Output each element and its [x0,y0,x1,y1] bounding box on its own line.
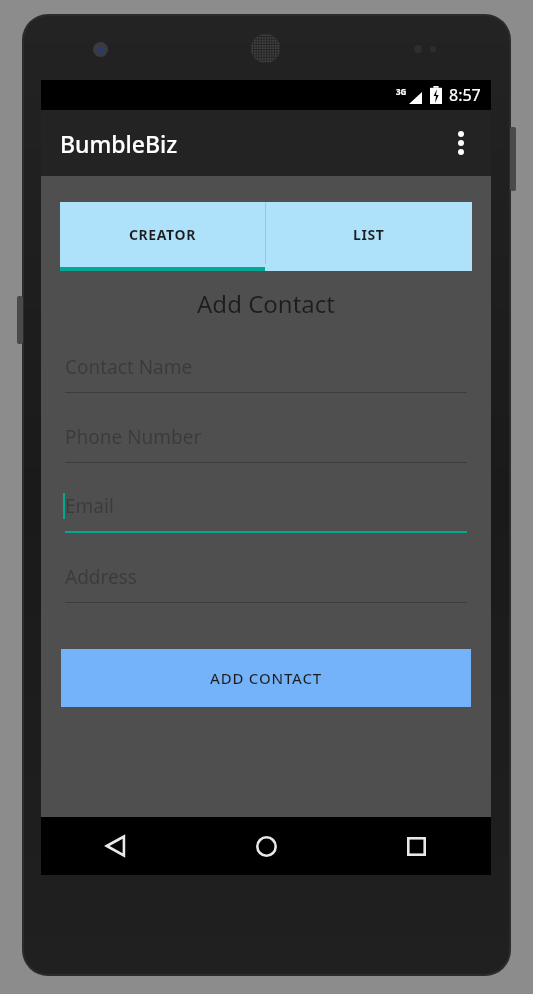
button[interactable]: Recent apps [341,817,491,875]
button[interactable]: Contact Name [65,341,467,411]
button[interactable]: More options [437,119,485,167]
button[interactable]: Home [191,817,341,875]
staticText: BumbleBiz [60,128,178,159]
staticText: CREATOR [129,225,196,244]
button[interactable]: Back [41,817,191,875]
button[interactable]: ADD CONTACT [61,649,471,707]
staticText: Contact Name [65,354,193,380]
button[interactable]: Phone Number [65,411,467,481]
staticText: ADD CONTACT [210,668,322,688]
button[interactable]: LIST [266,202,472,271]
staticText: LIST [353,225,385,244]
staticText: Add Contact [41,287,491,320]
staticText: Email [65,493,114,519]
staticText: 3G [396,86,407,97]
button[interactable]: CREATOR [60,202,265,271]
button[interactable]: Email [65,481,467,551]
staticText: Phone Number [65,424,202,450]
staticText: Address [65,564,137,590]
staticText: 8:57 [449,84,481,106]
